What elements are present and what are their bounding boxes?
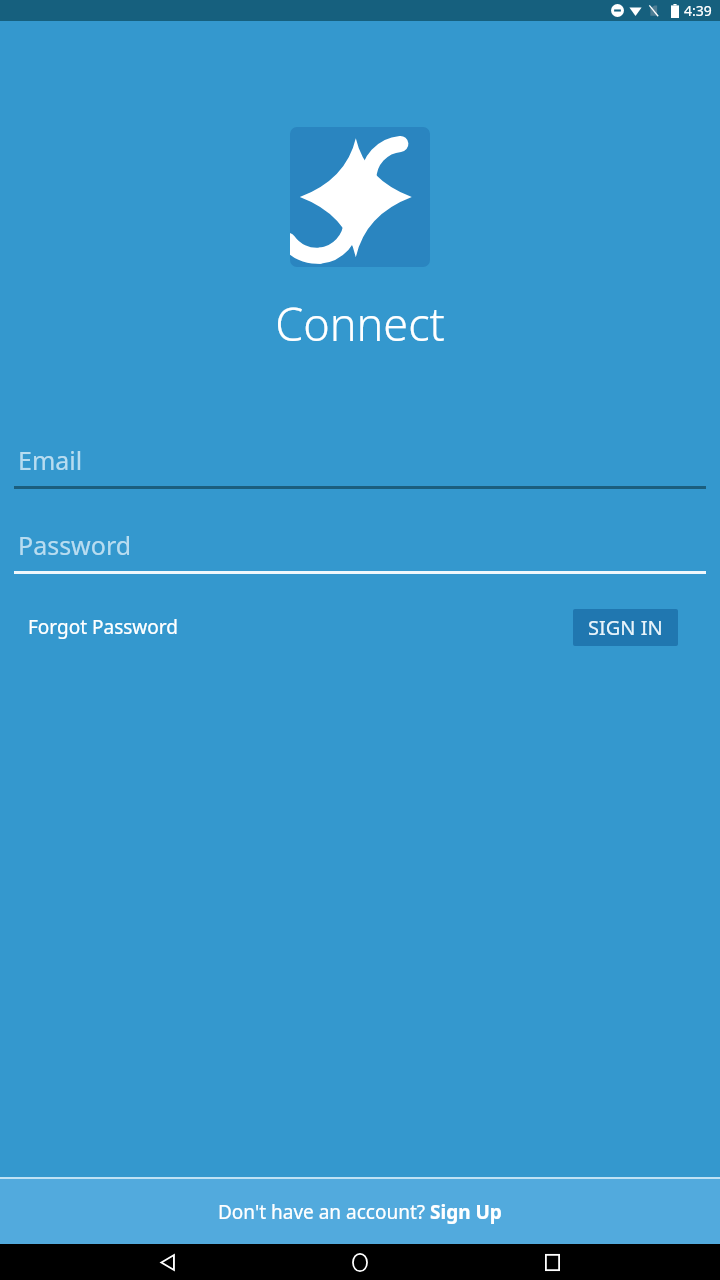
button[interactable]: Back [144,1244,192,1280]
button[interactable]: Forgot Password [28,606,178,648]
staticText: 4:39 [684,1,712,20]
staticText: Forgot Password [28,614,178,640]
staticText: Password [18,528,132,562]
staticText: Sign Up [430,1199,502,1225]
button[interactable]: Home [336,1244,384,1280]
button[interactable]: Recents [528,1244,576,1280]
button[interactable]: Password [14,525,706,574]
staticText: Don't have an account? [218,1199,430,1225]
staticText: Connect [275,293,445,354]
staticText: SIGN IN [588,614,663,641]
button[interactable]: SIGN IN [573,609,678,646]
staticText: Email [18,443,83,477]
button[interactable]: Don't have an account? [0,1179,720,1244]
button[interactable]: Email [14,440,706,489]
